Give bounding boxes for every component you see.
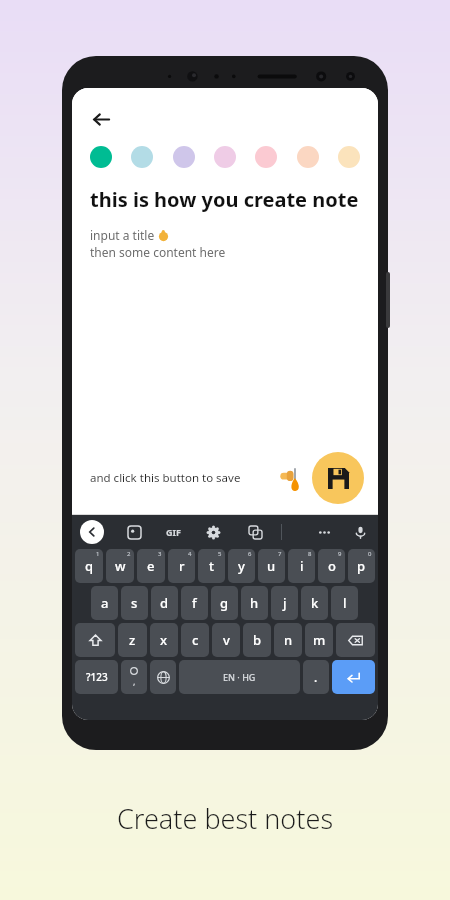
button[interactable]: j bbox=[271, 586, 298, 620]
staticText: 3 bbox=[158, 550, 162, 558]
staticText: 5 bbox=[218, 550, 222, 558]
button[interactable]: n bbox=[274, 623, 302, 657]
staticText: then some content here bbox=[90, 244, 226, 260]
staticText: 2 bbox=[127, 550, 131, 558]
button[interactable]: o bbox=[318, 549, 345, 583]
staticText: EN · HG bbox=[223, 671, 256, 683]
button[interactable] bbox=[255, 146, 277, 168]
staticText: input a title bbox=[90, 227, 158, 243]
button[interactable] bbox=[150, 660, 176, 694]
button[interactable]: ?123 bbox=[75, 660, 118, 694]
staticText: r bbox=[179, 557, 185, 575]
button[interactable]: GIF bbox=[166, 526, 181, 538]
staticText: d bbox=[160, 594, 169, 612]
staticText: x bbox=[160, 631, 168, 649]
button[interactable] bbox=[336, 623, 375, 657]
button[interactable] bbox=[297, 146, 319, 168]
staticText: GIF bbox=[166, 526, 181, 538]
staticText: q bbox=[85, 557, 94, 575]
button[interactable] bbox=[90, 146, 112, 168]
staticText: ?123 bbox=[86, 670, 108, 684]
staticText: y bbox=[238, 557, 245, 575]
staticText: this is how you create note bbox=[90, 186, 359, 213]
button[interactable]: Stickers bbox=[124, 522, 144, 542]
staticText: w bbox=[115, 557, 126, 575]
button[interactable]: f bbox=[181, 586, 208, 620]
button[interactable]: h bbox=[241, 586, 268, 620]
staticText: 1 bbox=[96, 550, 100, 558]
button[interactable]: s bbox=[121, 586, 148, 620]
button[interactable]: Settings bbox=[203, 522, 223, 542]
staticText: n bbox=[284, 631, 293, 649]
staticText: k bbox=[311, 594, 319, 612]
staticText: b bbox=[253, 631, 262, 649]
button[interactable] bbox=[332, 660, 375, 694]
button[interactable] bbox=[173, 146, 195, 168]
button[interactable] bbox=[75, 623, 115, 657]
button[interactable]: d bbox=[151, 586, 178, 620]
button[interactable]: Voice input bbox=[350, 522, 370, 542]
staticText: , bbox=[133, 675, 136, 687]
button[interactable]: w bbox=[106, 549, 134, 583]
button[interactable]: v bbox=[212, 623, 240, 657]
button[interactable]: , bbox=[121, 660, 147, 694]
staticText: t bbox=[209, 557, 214, 575]
staticText: z bbox=[129, 631, 136, 649]
staticText: Create best notes bbox=[0, 800, 450, 837]
button[interactable]: a bbox=[91, 586, 118, 620]
staticText: m bbox=[313, 631, 326, 649]
staticText: g bbox=[220, 594, 229, 612]
staticText: h bbox=[250, 594, 259, 612]
staticText: l bbox=[343, 594, 347, 612]
staticText: . bbox=[314, 669, 318, 685]
button[interactable]: Translate bbox=[245, 522, 265, 542]
button[interactable]: g bbox=[211, 586, 238, 620]
button[interactable]: b bbox=[243, 623, 271, 657]
button[interactable]: y bbox=[228, 549, 255, 583]
button[interactable]: Back bbox=[84, 102, 118, 136]
staticText: e bbox=[147, 557, 155, 575]
staticText: a bbox=[101, 594, 109, 612]
button[interactable]: z bbox=[118, 623, 147, 657]
button[interactable]: p bbox=[348, 549, 375, 583]
staticText: 8 bbox=[308, 550, 312, 558]
staticText: i bbox=[300, 557, 304, 575]
staticText: 7 bbox=[278, 550, 282, 558]
staticText: u bbox=[267, 557, 276, 575]
button[interactable]: k bbox=[301, 586, 328, 620]
button[interactable]: EN · HG bbox=[179, 660, 300, 694]
staticText: s bbox=[131, 594, 138, 612]
button[interactable]: e bbox=[137, 549, 165, 583]
button[interactable]: t bbox=[198, 549, 225, 583]
button[interactable]: q bbox=[75, 549, 103, 583]
button[interactable]: l bbox=[331, 586, 358, 620]
button[interactable]: u bbox=[258, 549, 285, 583]
button[interactable] bbox=[131, 146, 153, 168]
staticText: j bbox=[283, 594, 287, 612]
button[interactable]: i bbox=[288, 549, 315, 583]
staticText: f bbox=[192, 594, 197, 612]
staticText: and click this button to save bbox=[90, 470, 241, 486]
button[interactable]: More options bbox=[314, 522, 334, 542]
button[interactable] bbox=[338, 146, 360, 168]
staticText: o bbox=[328, 557, 336, 575]
staticText: 9 bbox=[338, 550, 342, 558]
button[interactable] bbox=[214, 146, 236, 168]
staticText: 4 bbox=[188, 550, 192, 558]
button[interactable]: Back bbox=[80, 520, 104, 544]
staticText: v bbox=[223, 631, 230, 649]
button[interactable]: r bbox=[168, 549, 195, 583]
staticText: p bbox=[357, 557, 366, 575]
staticText: 6 bbox=[248, 550, 252, 558]
button[interactable]: Save note bbox=[312, 452, 364, 504]
button[interactable]: . bbox=[303, 660, 329, 694]
button[interactable]: x bbox=[150, 623, 178, 657]
button[interactable]: m bbox=[305, 623, 333, 657]
button[interactable]: c bbox=[181, 623, 209, 657]
staticText: 0 bbox=[368, 550, 372, 558]
staticText: c bbox=[192, 631, 199, 649]
